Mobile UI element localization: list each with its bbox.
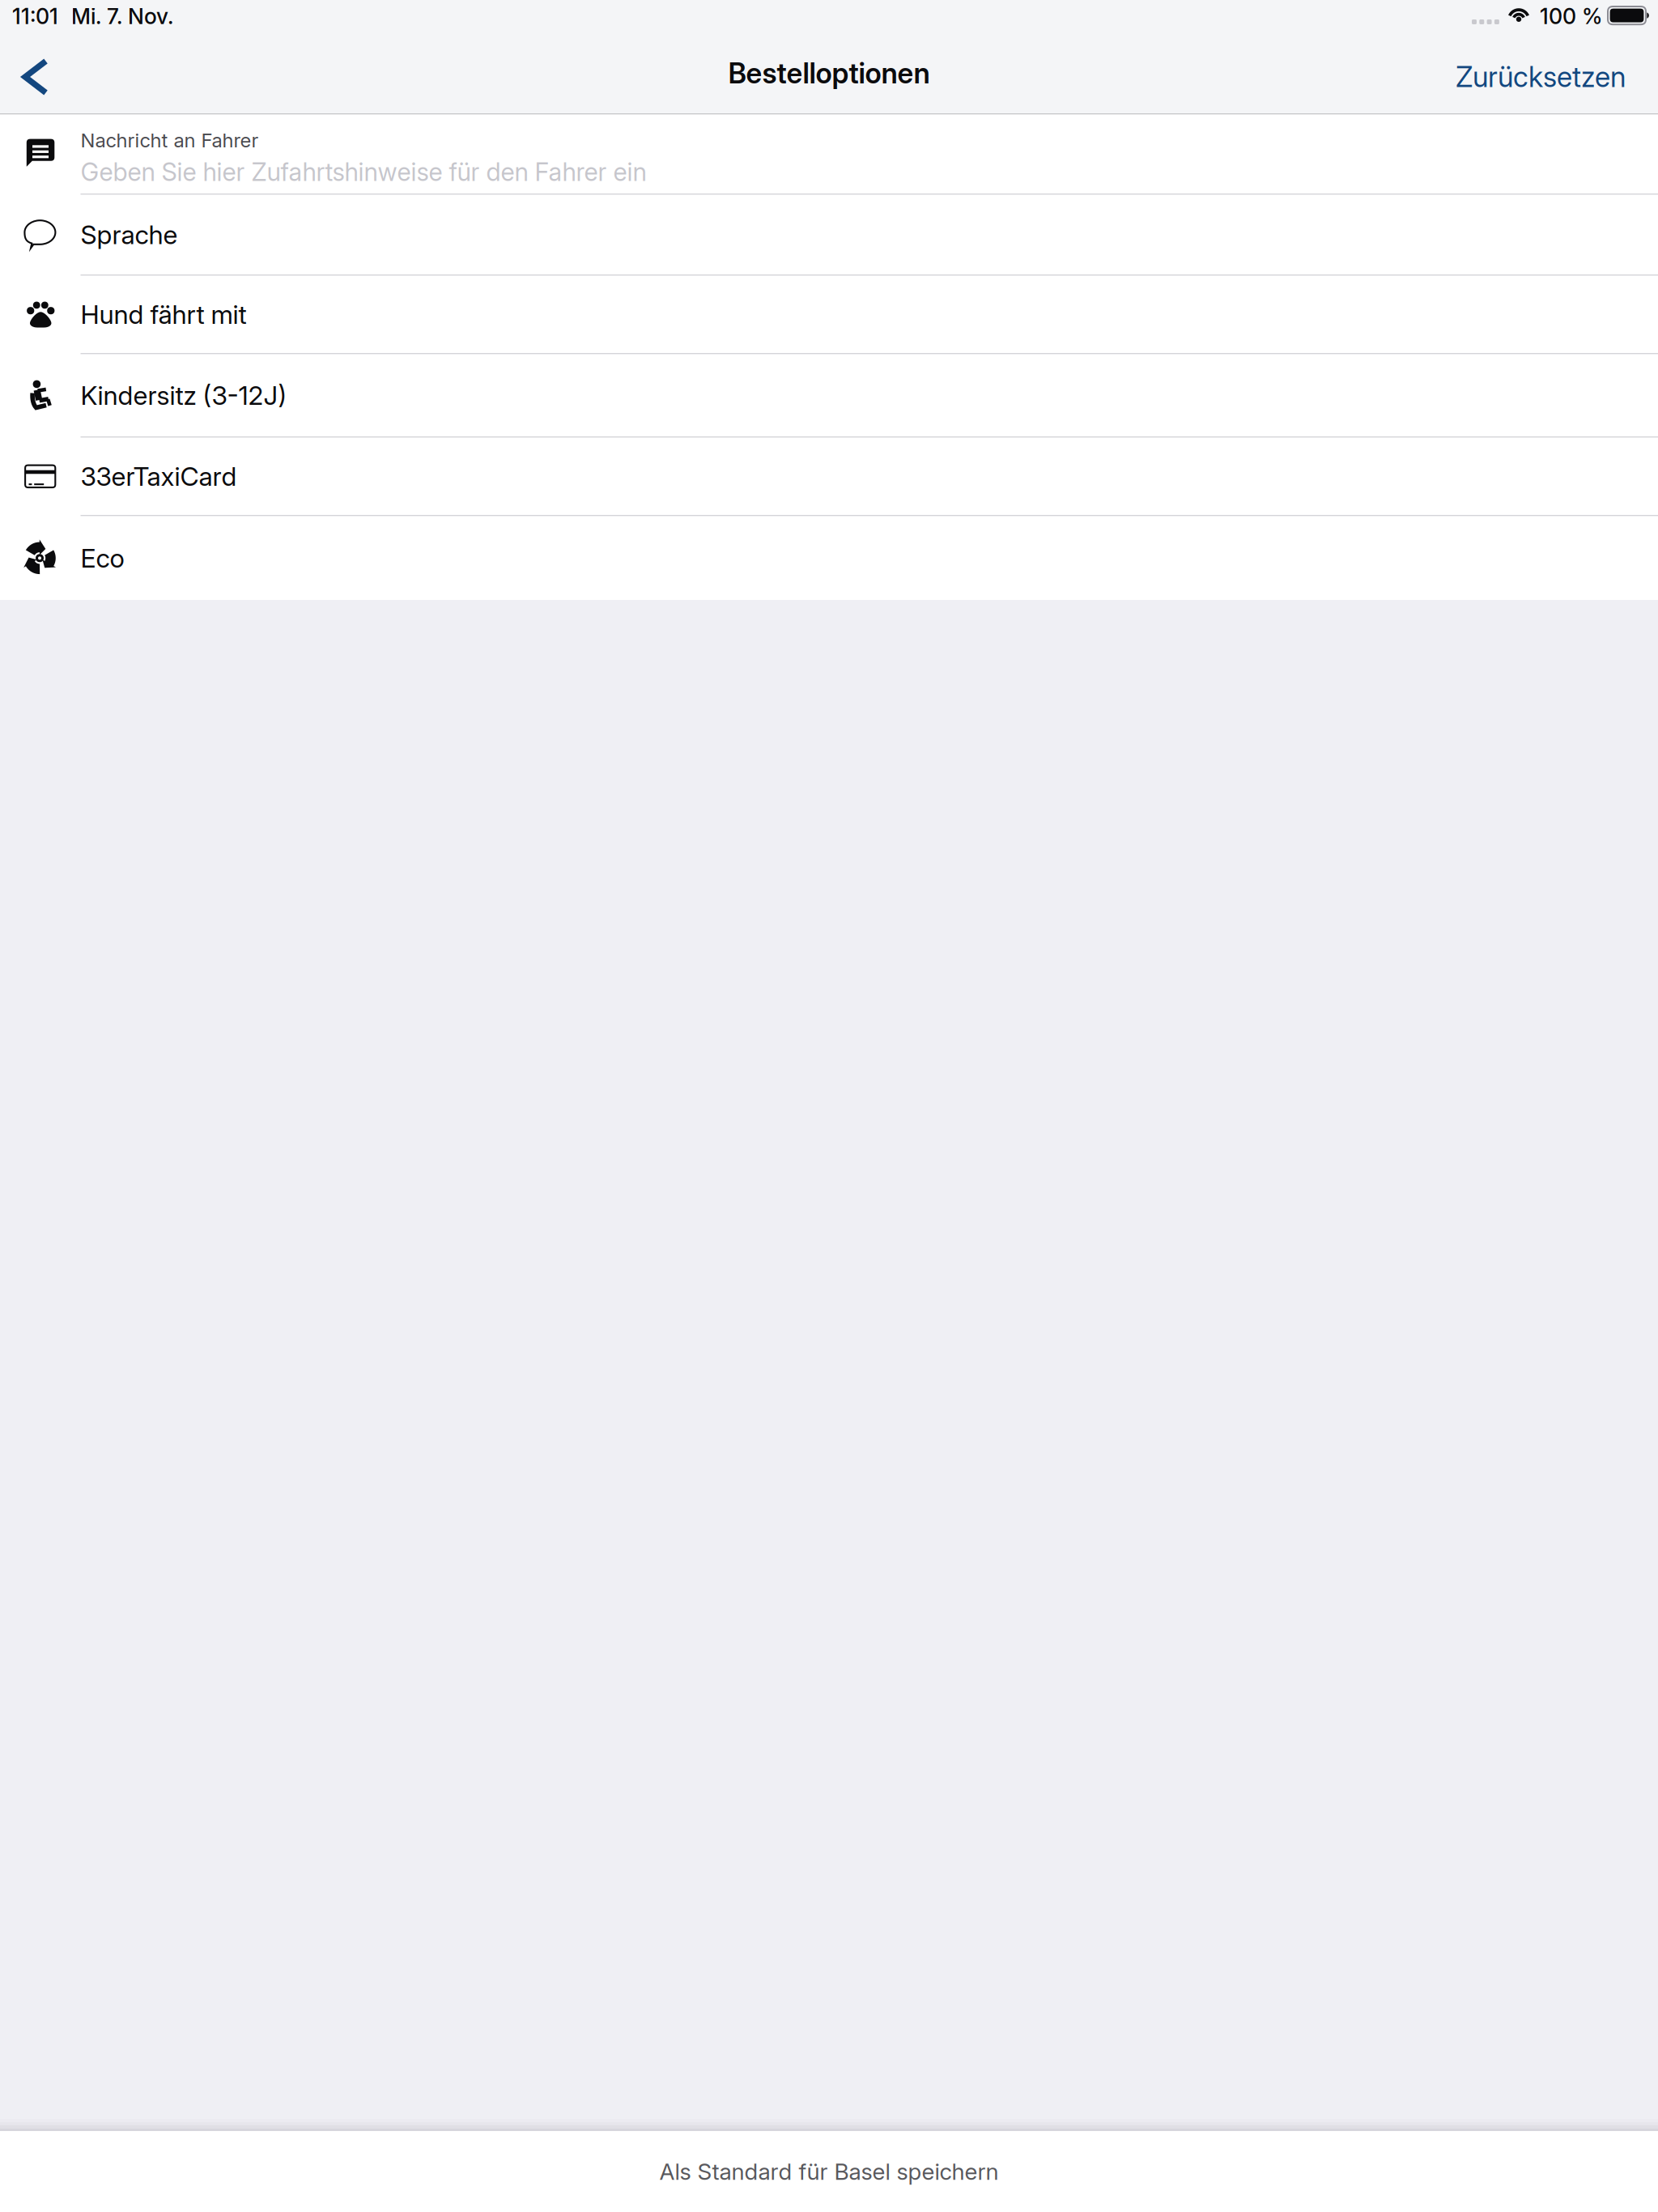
button[interactable]: Kindersitz (3-12J): [0, 354, 1658, 436]
staticText: Nachricht an Fahrer: [81, 128, 259, 152]
button[interactable]: Hund fährt mit: [0, 276, 1658, 353]
button[interactable]: Nachricht an Fahrer: [0, 115, 1658, 194]
staticText: Eco: [81, 542, 124, 574]
staticText: Geben Sie hier Zufahrtshinweise für den …: [81, 157, 646, 187]
staticText: Hund fährt mit: [81, 299, 247, 330]
button[interactable]: Zurücksetzen: [1431, 46, 1658, 108]
staticText: 100 %: [1540, 3, 1602, 29]
button[interactable]: Sprache: [0, 195, 1658, 274]
staticText: Mi. 7. Nov.: [71, 3, 173, 29]
staticText: Als Standard für Basel speichern: [659, 2158, 999, 2185]
staticText: 11:01: [12, 3, 58, 29]
staticText: Kindersitz (3-12J): [81, 380, 287, 411]
staticText: Sprache: [81, 219, 178, 250]
button[interactable]: 33erTaxiCard: [0, 438, 1658, 515]
staticText: Zurücksetzen: [1456, 60, 1626, 94]
staticText: Bestelloptionen: [728, 56, 930, 90]
button[interactable]: Eco: [0, 516, 1658, 600]
staticText: 33erTaxiCard: [81, 461, 237, 492]
button[interactable]: Als Standard für Basel speichern: [0, 2131, 1658, 2212]
button[interactable]: Zurück: [0, 42, 70, 112]
